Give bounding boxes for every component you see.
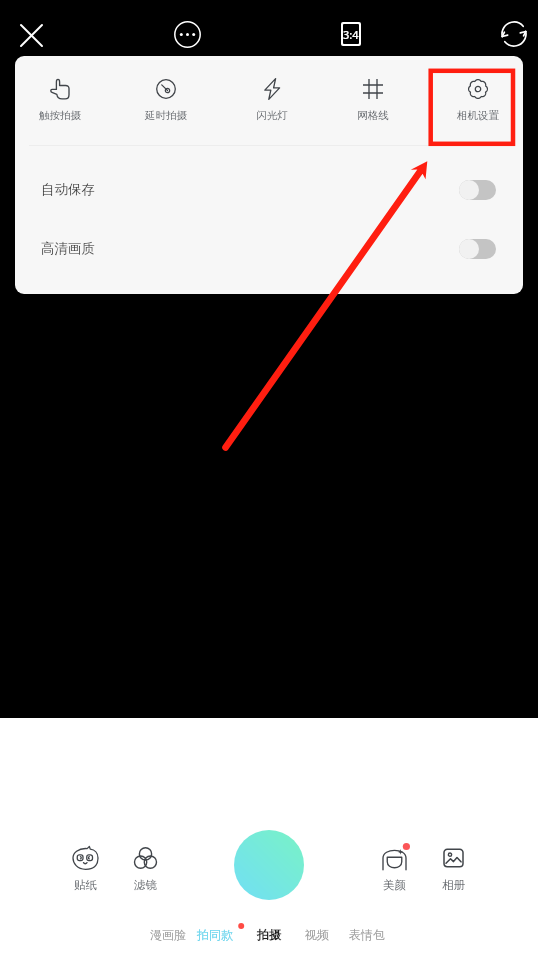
staticText: 网格线 — [357, 109, 389, 122]
button[interactable]: 相册 — [424, 846, 482, 892]
staticText: 美颜 — [383, 878, 406, 892]
button[interactable]: Shutter — [234, 830, 304, 900]
button[interactable]: 高清画质 — [15, 219, 523, 278]
button[interactable]: 拍同款 — [189, 920, 241, 948]
button[interactable]: Switch camera — [494, 14, 534, 54]
staticText: 触按拍摄 — [39, 109, 81, 122]
staticText: 表情包 — [349, 927, 385, 942]
staticText: 相机设置 — [457, 109, 499, 122]
button[interactable]: 闪光灯 — [227, 78, 317, 122]
button[interactable]: Aspect ratio 3 to 4 — [331, 12, 371, 56]
staticText: 自动保存 — [41, 181, 95, 198]
staticText: 闪光灯 — [256, 109, 288, 122]
staticText: 滤镜 — [134, 878, 157, 892]
button[interactable]: Close — [11, 15, 51, 55]
button[interactable]: 触按拍摄 — [15, 78, 105, 122]
button[interactable]: 拍摄 — [243, 920, 295, 948]
staticText: 拍摄 — [257, 927, 281, 942]
staticText: 延时拍摄 — [145, 109, 187, 122]
button[interactable]: 漫画脸 — [142, 920, 194, 948]
staticText: 贴纸 — [74, 878, 97, 892]
staticText: 相册 — [442, 878, 465, 892]
button[interactable]: 滤镜 — [116, 846, 174, 892]
button[interactable]: 美颜 — [365, 846, 423, 892]
button[interactable]: 相机设置 — [433, 78, 523, 122]
staticText: 漫画脸 — [150, 927, 186, 942]
button[interactable]: 自动保存 — [15, 160, 523, 219]
staticText: 视频 — [305, 927, 329, 942]
button[interactable]: 视频 — [291, 920, 343, 948]
button[interactable]: 表情包 — [341, 920, 393, 948]
button[interactable]: 贴纸 — [56, 846, 114, 892]
staticText: 拍同款 — [197, 927, 233, 942]
button[interactable]: More options — [167, 14, 207, 54]
button[interactable]: 延时拍摄 — [121, 78, 211, 122]
staticText: 3:4 — [343, 27, 359, 42]
button[interactable]: 网格线 — [328, 78, 418, 122]
staticText: 高清画质 — [41, 240, 95, 257]
